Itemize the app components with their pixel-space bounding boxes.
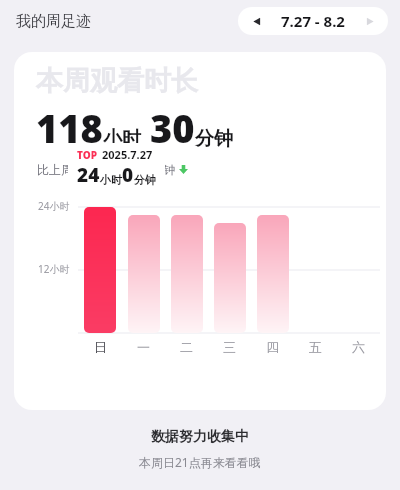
button[interactable]: Next week [358, 9, 382, 33]
staticText: 24小时 [38, 199, 70, 213]
button[interactable] [122, 183, 165, 333]
staticText: 二 [180, 339, 193, 355]
staticText: 本周观看时长 [36, 64, 198, 98]
button[interactable] [78, 183, 122, 333]
staticText: 五 [309, 339, 322, 355]
staticText: 118 [36, 102, 103, 154]
staticText: 日 [94, 339, 107, 355]
staticText: 我的周足迹 [16, 12, 91, 31]
button[interactable]: TOP [68, 143, 165, 192]
staticText: 比上周减少 20小时11分钟 [37, 161, 176, 177]
button[interactable]: Previous week [244, 9, 268, 33]
staticText: TOP [77, 148, 97, 162]
staticText: 2025.7.27 [102, 147, 153, 162]
button[interactable] [251, 183, 294, 333]
button[interactable] [208, 183, 251, 333]
button[interactable] [165, 183, 208, 333]
staticText: 7.27 - 8.2 [281, 11, 345, 31]
staticText: 四 [266, 339, 279, 355]
staticText: 30 [150, 102, 195, 154]
staticText: 小时 [103, 127, 141, 151]
staticText: 分钟 [195, 127, 233, 151]
button[interactable]: Previous week [238, 7, 388, 35]
staticText: 12小时 [38, 262, 70, 276]
staticText: 24 [77, 162, 100, 188]
staticText: 小时 [100, 173, 122, 187]
staticText: 数据努力收集中 [151, 428, 249, 446]
staticText: 一 [137, 339, 150, 355]
staticText: 0 [122, 162, 134, 188]
staticText: 三 [223, 339, 236, 355]
staticText: 本周日21点再来看看哦 [139, 454, 261, 470]
staticText: 分钟 [134, 173, 156, 187]
staticText: 六 [352, 339, 365, 355]
